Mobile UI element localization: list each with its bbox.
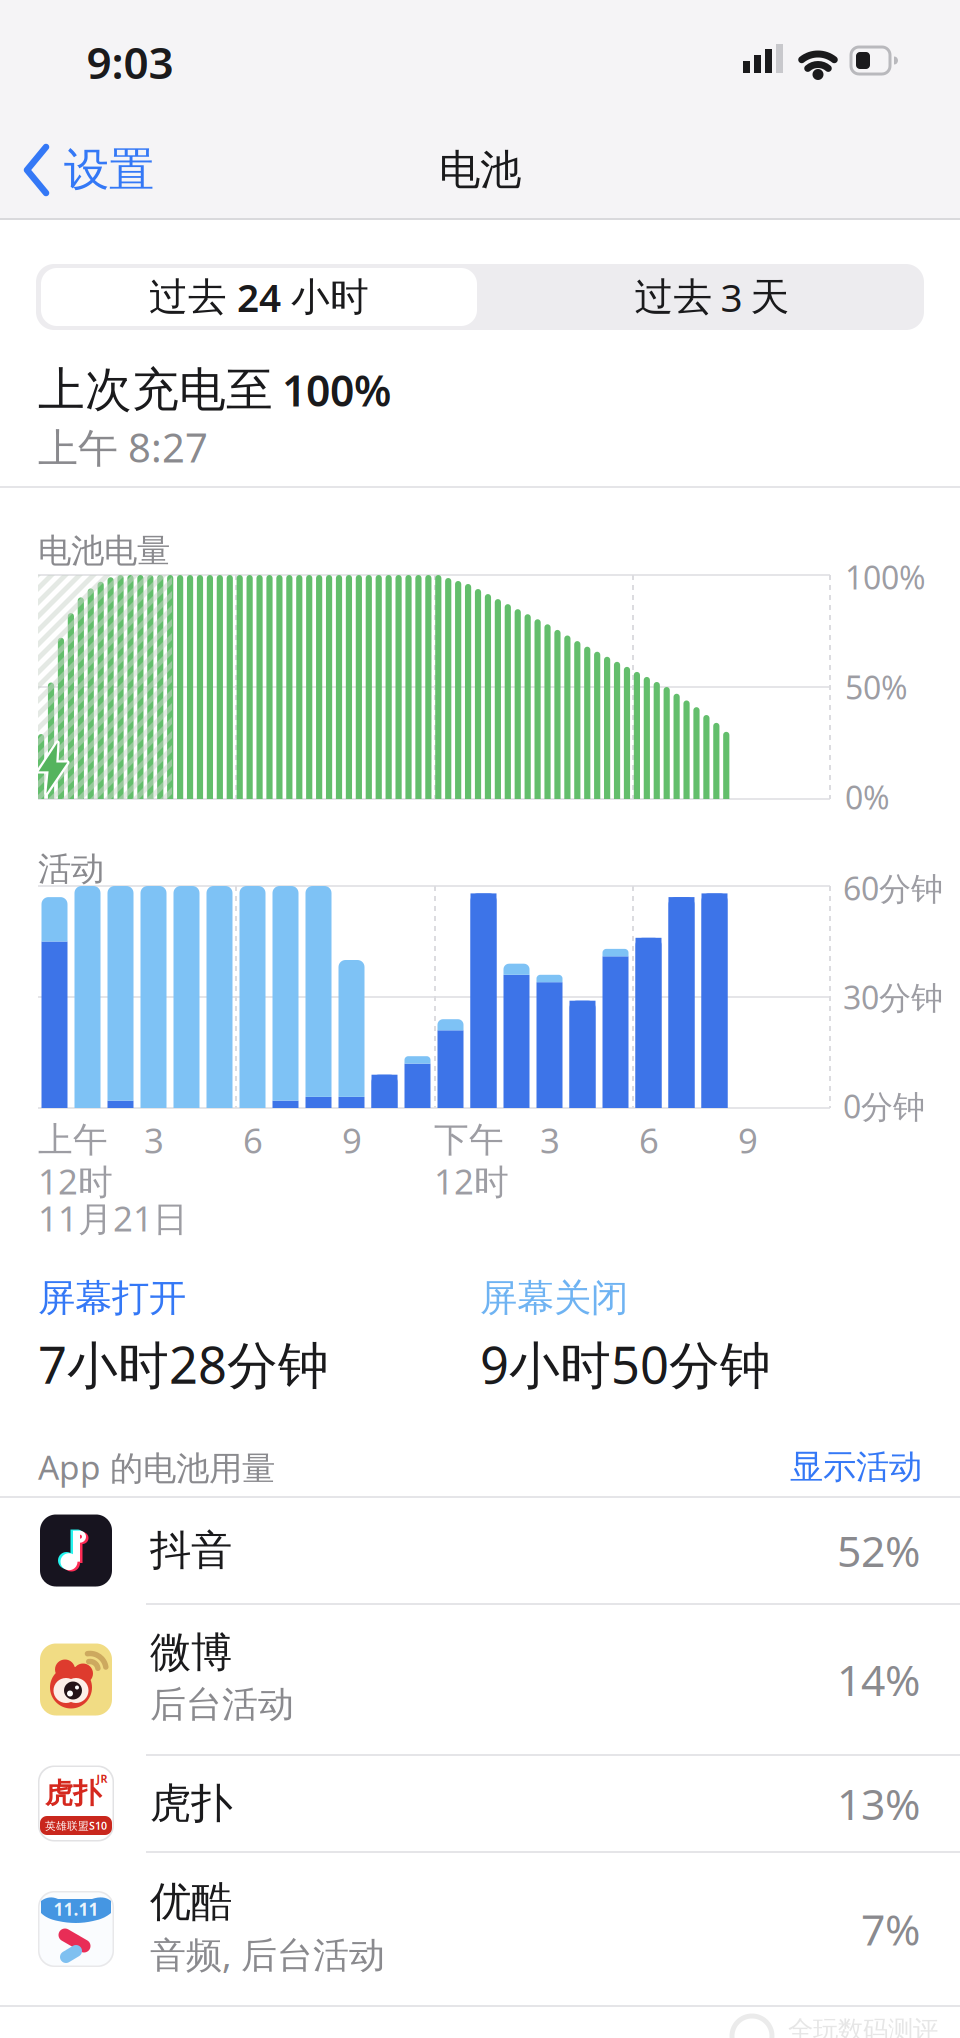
staticText: 12时: [38, 1158, 113, 1204]
staticText: 微博: [150, 1627, 232, 1678]
staticText: 9:03: [86, 33, 173, 91]
staticText: 屏幕打开: [38, 1275, 186, 1321]
button[interactable]: 抖音: [0, 1497, 960, 1604]
button[interactable]: 过去: [41, 268, 477, 326]
staticText: 14%: [837, 1651, 920, 1708]
staticText: 电池: [439, 145, 521, 195]
staticText: 6: [639, 1117, 659, 1163]
staticText: 过去: [149, 273, 227, 321]
staticText: 优酷: [150, 1877, 232, 1927]
staticText: 24: [237, 271, 281, 323]
staticText: 11月21日: [38, 1195, 188, 1241]
button[interactable]: 设置: [0, 125, 220, 215]
staticText: 9小时50分钟: [480, 1330, 771, 1398]
staticText: 60分钟: [843, 867, 943, 909]
staticText: 上午: [38, 1119, 108, 1161]
staticText: 6: [243, 1117, 263, 1163]
button[interactable]: 显示活动: [682, 1446, 922, 1487]
button[interactable]: 过去: [492, 264, 932, 330]
staticText: 抖音: [150, 1525, 232, 1576]
staticText: 9: [342, 1117, 362, 1163]
staticText: 50%: [845, 666, 908, 708]
staticText: 100%: [845, 556, 926, 598]
staticText: 小时: [291, 273, 369, 321]
staticText: 过去: [634, 273, 712, 321]
staticText: 活动: [38, 848, 104, 889]
staticText: 3: [720, 271, 742, 323]
staticText: 显示活动: [790, 1446, 922, 1487]
staticText: 英雄联盟S10: [45, 1818, 107, 1833]
button[interactable]: 虎扑: [0, 1755, 960, 1852]
button[interactable]: 微博: [0, 1604, 960, 1755]
staticText: 7%: [861, 1901, 920, 1957]
staticText: 30分钟: [843, 976, 943, 1018]
staticText: 0分钟: [843, 1085, 925, 1127]
staticText: 0%: [845, 776, 890, 818]
staticText: 全玩数码测评: [788, 2014, 938, 2038]
staticText: 9: [738, 1117, 758, 1163]
staticText: 上午 8:27: [38, 420, 208, 473]
staticText: 虎扑: [150, 1778, 232, 1829]
staticText: JR: [96, 1771, 107, 1786]
staticText: 下午: [434, 1119, 504, 1161]
staticText: 7小时28分钟: [38, 1330, 329, 1398]
staticText: 13%: [837, 1775, 920, 1832]
staticText: 电池电量: [38, 530, 170, 571]
staticText: 52%: [837, 1522, 920, 1579]
staticText: 上次充电至: [38, 361, 273, 419]
staticText: 后台活动: [150, 1682, 294, 1727]
staticText: 设置: [64, 142, 154, 198]
staticText: 屏幕关闭: [480, 1275, 628, 1321]
staticText: 12时: [434, 1158, 509, 1204]
staticText: 3: [540, 1117, 560, 1163]
staticText: 3: [144, 1117, 164, 1163]
staticText: App 的电池用量: [38, 1445, 275, 1489]
staticText: 天: [750, 273, 789, 321]
staticText: 音频, 后台活动: [150, 1930, 385, 1978]
staticText: 11.11: [53, 1897, 98, 1920]
staticText: 虎扑: [45, 1776, 101, 1811]
button[interactable]: 11.11: [0, 1852, 960, 2006]
staticText: 100%: [282, 362, 391, 418]
